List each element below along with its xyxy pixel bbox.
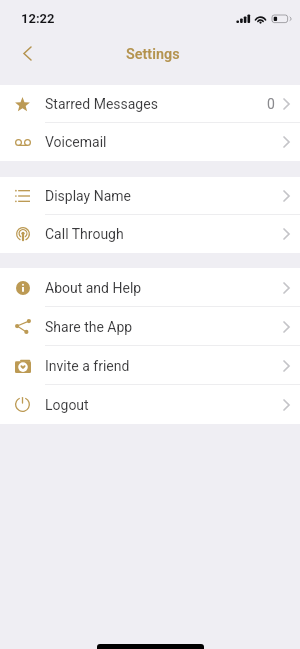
staticText: Logout (45, 397, 89, 413)
button[interactable]: Invite a friend (0, 346, 300, 385)
button[interactable]: Share the App (0, 307, 300, 346)
button[interactable]: Display Name (0, 177, 300, 215)
button[interactable]: Starred Messages (0, 85, 300, 123)
button[interactable]: Back (13, 39, 41, 67)
staticText: 0 (267, 96, 275, 112)
button[interactable]: Logout (0, 385, 300, 424)
staticText: Invite a friend (45, 358, 130, 374)
staticText: 12:22 (21, 11, 55, 26)
staticText: Display Name (45, 188, 131, 204)
staticText: Call Through (45, 226, 124, 242)
button[interactable]: About and Help (0, 268, 300, 307)
button[interactable]: Call Through (0, 215, 300, 253)
staticText: About and Help (45, 280, 142, 296)
staticText: Settings (126, 46, 180, 63)
button[interactable]: Voicemail (0, 123, 300, 161)
staticText: Starred Messages (45, 96, 158, 112)
staticText: Share the App (45, 319, 133, 335)
staticText: Voicemail (45, 134, 107, 150)
